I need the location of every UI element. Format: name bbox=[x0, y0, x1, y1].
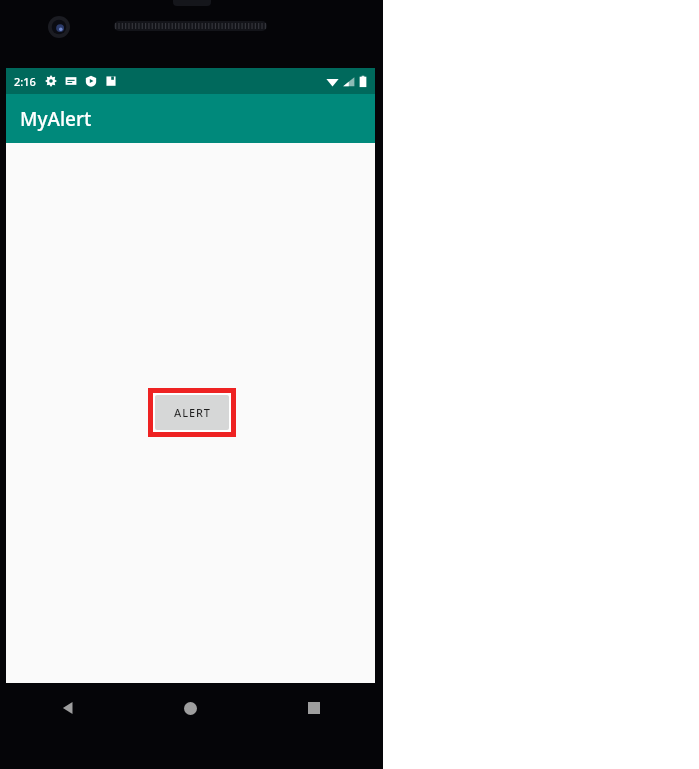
button[interactable]: Home bbox=[129, 683, 252, 733]
button[interactable]: Back bbox=[6, 683, 129, 733]
staticText: 2:16 bbox=[14, 74, 36, 89]
staticText: ALERT bbox=[174, 405, 211, 420]
staticText: MyAlert bbox=[20, 106, 92, 132]
button[interactable]: ALERT bbox=[155, 395, 229, 430]
button[interactable]: Recents bbox=[252, 683, 375, 733]
